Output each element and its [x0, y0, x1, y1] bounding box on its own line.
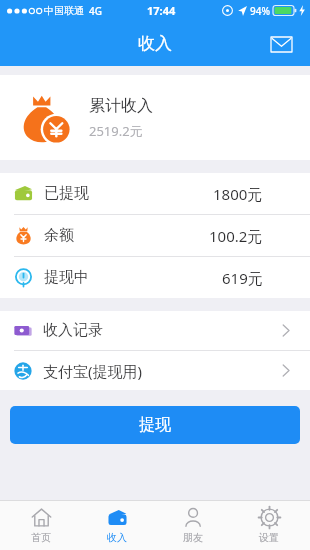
button[interactable]: 收入	[82, 501, 152, 550]
staticText: 收入	[138, 33, 172, 54]
staticText: 累计收入	[89, 96, 153, 116]
button[interactable]: Messages	[264, 27, 298, 61]
staticText: 619元	[222, 268, 263, 288]
staticText: 已提现	[44, 184, 89, 203]
button[interactable]: 已提现	[0, 173, 310, 214]
staticText: 1800元	[213, 184, 263, 204]
button[interactable]: 余额	[0, 215, 310, 256]
button[interactable]: 提现	[10, 406, 300, 444]
button[interactable]: 首页	[6, 501, 76, 550]
button[interactable]: 提现中	[0, 257, 310, 298]
staticText: 中国联通	[44, 4, 84, 17]
staticText: 提现中	[44, 268, 89, 287]
staticText: 收入	[107, 531, 127, 544]
button[interactable]: 设置	[234, 501, 304, 550]
staticText: 4G	[89, 4, 102, 18]
button[interactable]: 朋友	[158, 501, 228, 550]
button[interactable]: 累计收入	[0, 75, 310, 160]
button[interactable]: 收入记录	[0, 311, 310, 350]
staticText: 提现	[139, 415, 171, 435]
staticText: 余额	[44, 226, 74, 245]
staticText: 100.2元	[209, 226, 263, 246]
staticText: 首页	[31, 531, 51, 544]
staticText: 支付宝(提现用)	[43, 361, 143, 381]
staticText: 17:44	[147, 3, 176, 18]
staticText: 设置	[259, 531, 279, 544]
staticText: 94%	[250, 4, 270, 18]
staticText: 朋友	[183, 531, 203, 544]
button[interactable]: 支付宝(提现用)	[0, 351, 310, 390]
staticText: 收入记录	[43, 321, 103, 340]
staticText: 2519.2元	[89, 122, 143, 140]
